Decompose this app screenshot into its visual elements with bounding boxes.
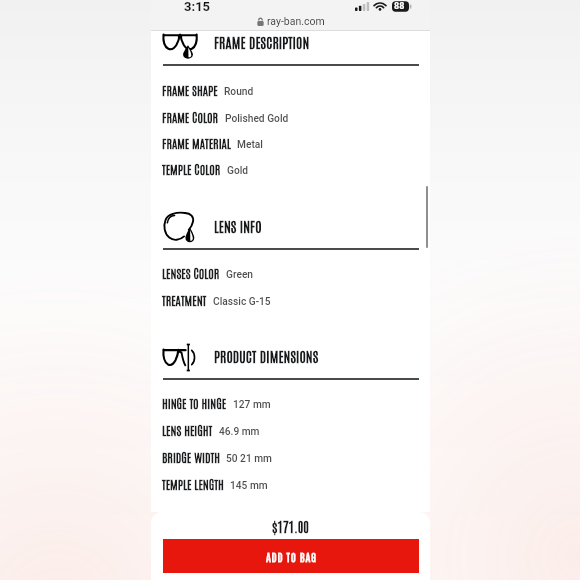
staticText: 127 mm bbox=[233, 399, 271, 411]
other: Frame description bbox=[163, 33, 197, 60]
staticText: TREATMENT bbox=[162, 292, 207, 308]
staticText: Gold bbox=[227, 165, 249, 177]
staticText: Polished Gold bbox=[225, 113, 289, 125]
staticText: 145 mm bbox=[230, 480, 268, 492]
staticText: ray-ban.com bbox=[267, 15, 325, 27]
staticText: BRIDGE WIDTH bbox=[162, 449, 220, 465]
staticText: 46.9 mm bbox=[219, 426, 260, 438]
staticText: Green bbox=[226, 269, 254, 281]
staticText: PRODUCT DIMENSIONS bbox=[214, 347, 319, 365]
staticText: TEMPLE COLOR bbox=[162, 161, 221, 177]
staticText: TEMPLE LENGTH bbox=[162, 476, 224, 492]
staticText: 50 21 mm bbox=[226, 453, 272, 465]
staticText: FRAME COLOR bbox=[162, 109, 219, 125]
staticText: LENS INFO bbox=[214, 217, 262, 235]
other: Product dimensions bbox=[163, 342, 197, 373]
staticText: Metal bbox=[237, 139, 263, 151]
staticText: $171.00 bbox=[151, 517, 430, 534]
staticText: LENSES COLOR bbox=[162, 265, 220, 281]
staticText: Classic G-15 bbox=[213, 296, 271, 308]
button[interactable]: ADD TO BAG bbox=[163, 539, 419, 573]
other: Lens info bbox=[163, 210, 197, 245]
staticText: LENS HEIGHT bbox=[162, 422, 213, 438]
staticText: FRAME DESCRIPTION bbox=[214, 33, 310, 51]
staticText: ADD TO BAG bbox=[266, 549, 317, 563]
staticText: FRAME SHAPE bbox=[162, 82, 218, 98]
staticText: 3:15 bbox=[184, 0, 211, 14]
staticText: FRAME MATERIAL bbox=[162, 135, 231, 151]
staticText: 88 bbox=[394, 1, 405, 12]
staticText: HINGE TO HINGE bbox=[162, 395, 227, 411]
staticText: Round bbox=[224, 86, 254, 98]
